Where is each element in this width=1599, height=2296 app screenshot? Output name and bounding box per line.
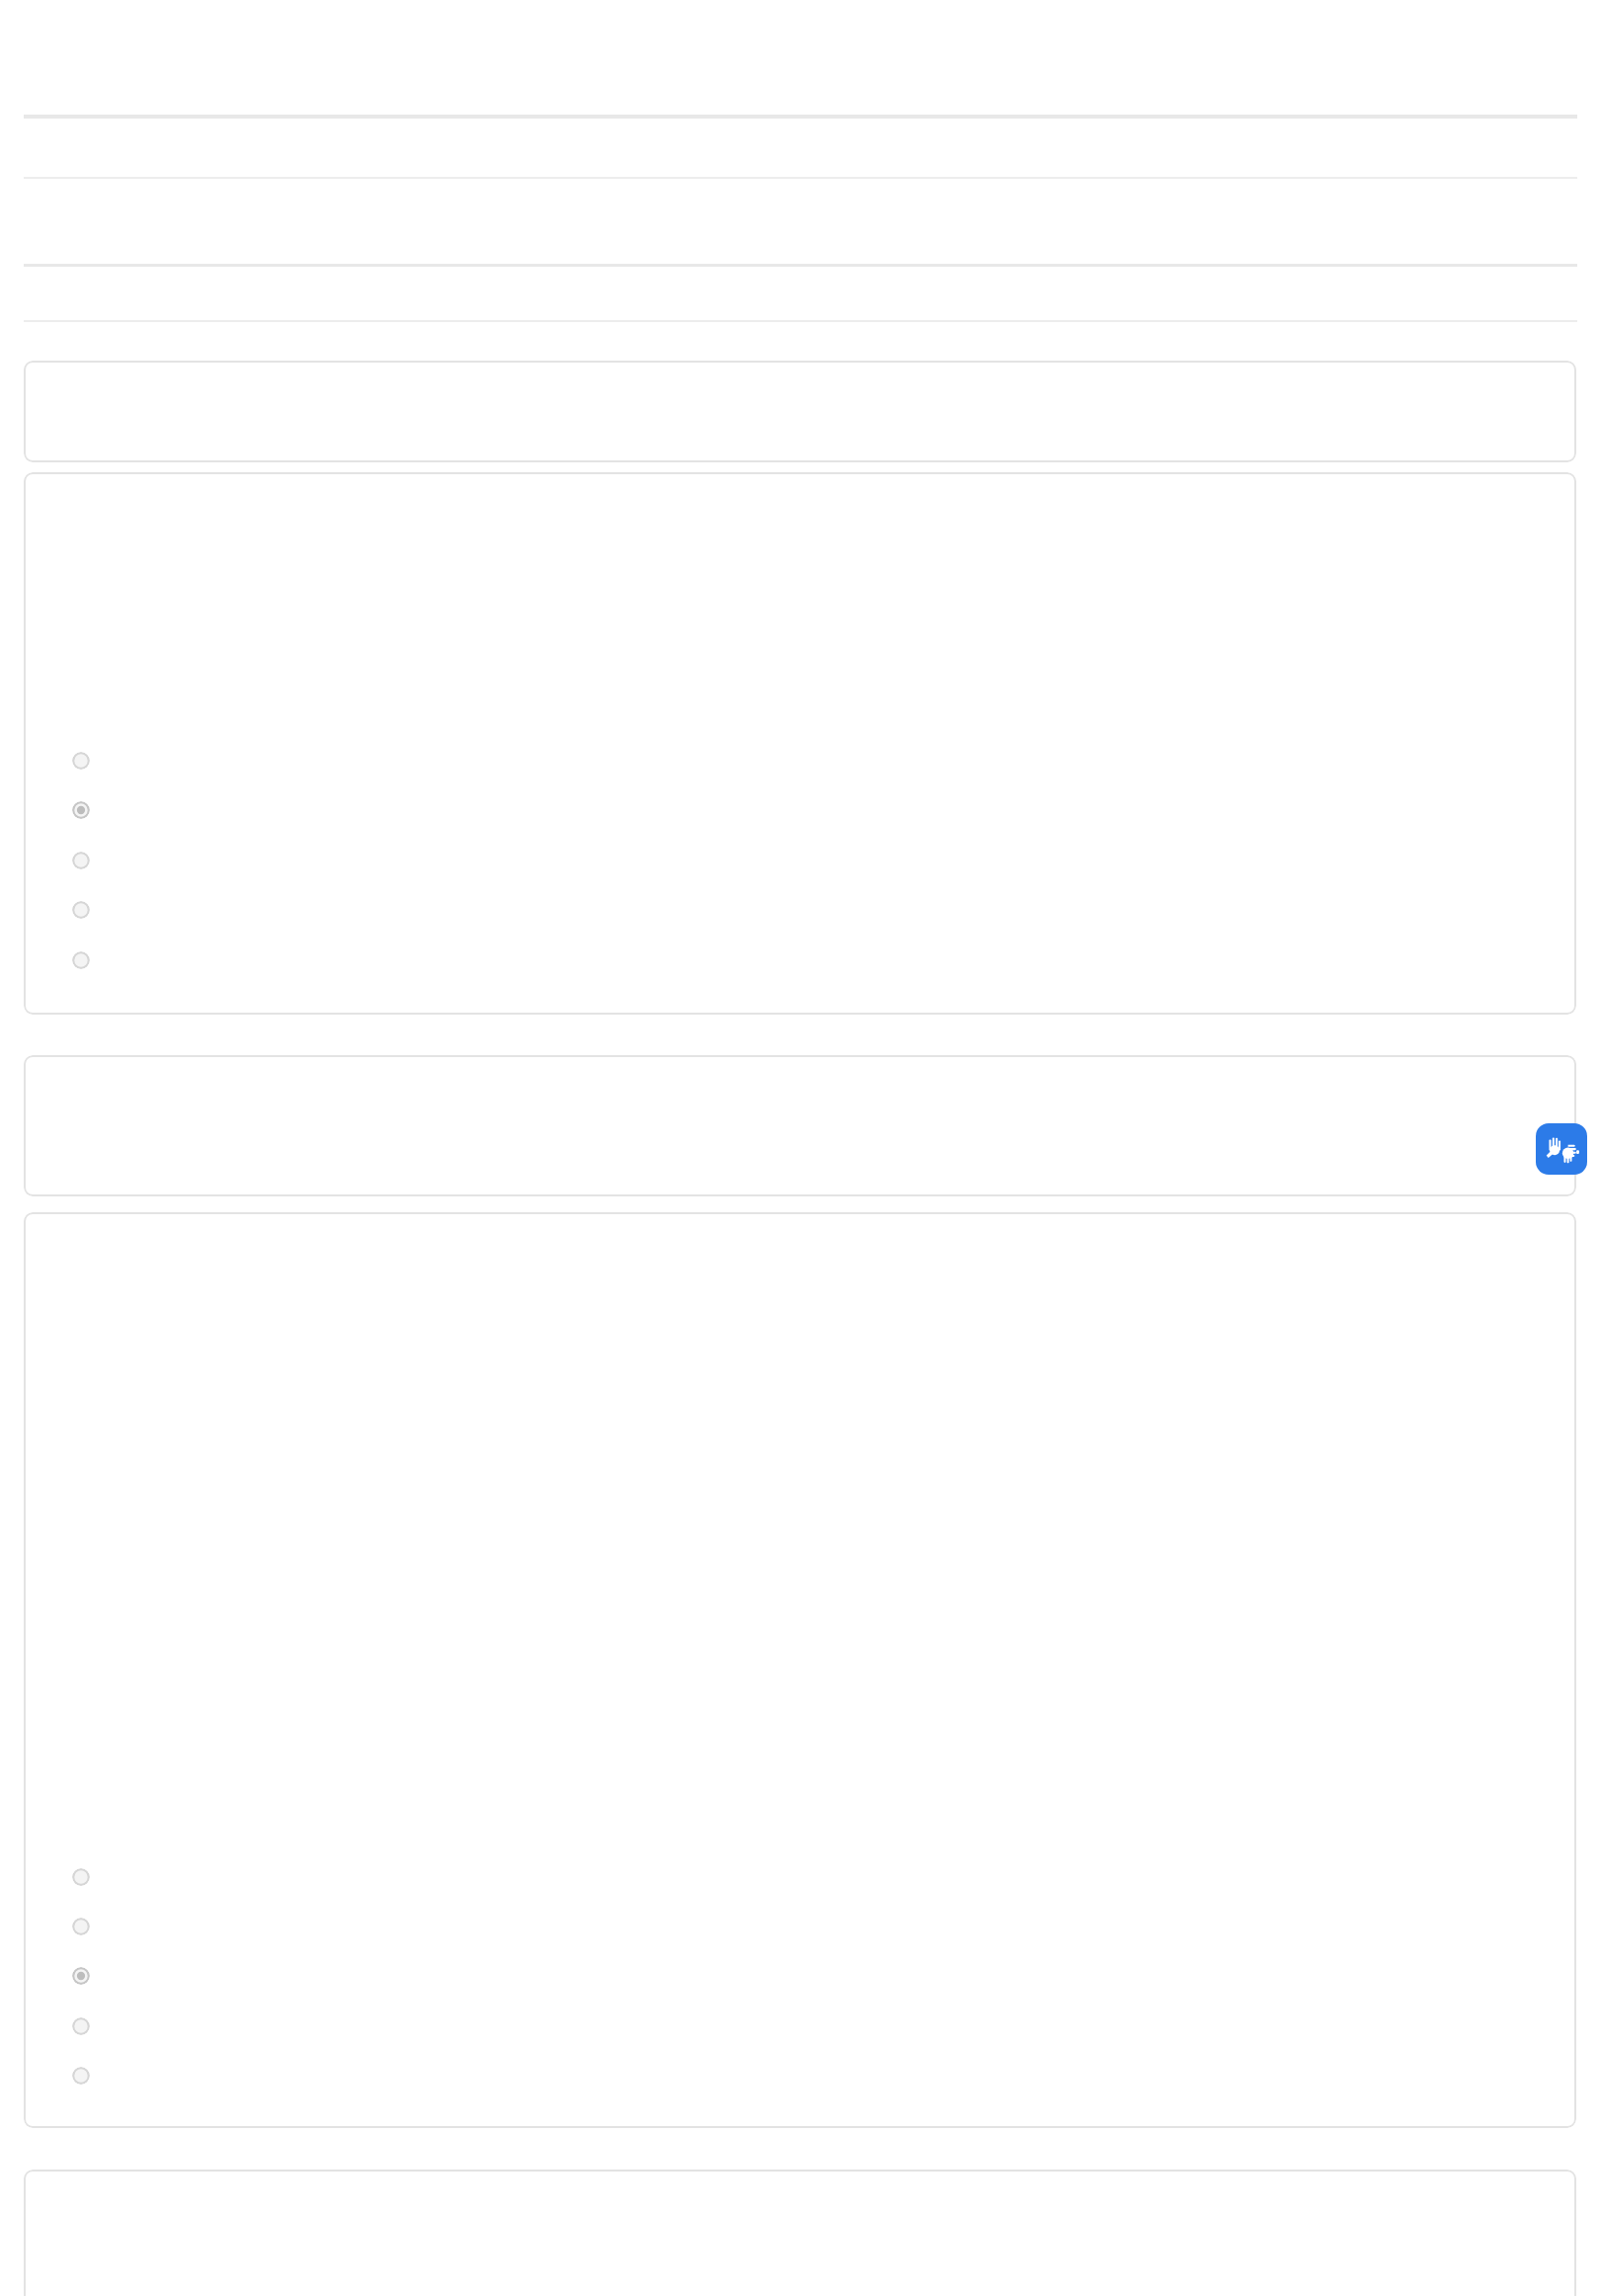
button[interactable] [24,1055,1576,1196]
button[interactable]: Option 5 [72,951,90,969]
button[interactable]: Option 1 [72,752,90,770]
button[interactable] [24,361,1576,462]
button[interactable] [24,2170,1576,2296]
button[interactable]: Choice 1 [72,1868,90,1886]
button[interactable]: Option 3 [72,852,90,869]
button[interactable]: Choice 5 [72,2067,90,2085]
button[interactable]: Option 2 [72,801,90,819]
button[interactable]: Choice 2 [72,1918,90,1935]
button[interactable]: Sign language [1536,1123,1587,1175]
button[interactable]: Option 4 [72,901,90,919]
button[interactable]: Choice 3 [72,1967,90,1985]
button[interactable]: Choice 4 [72,2017,90,2035]
